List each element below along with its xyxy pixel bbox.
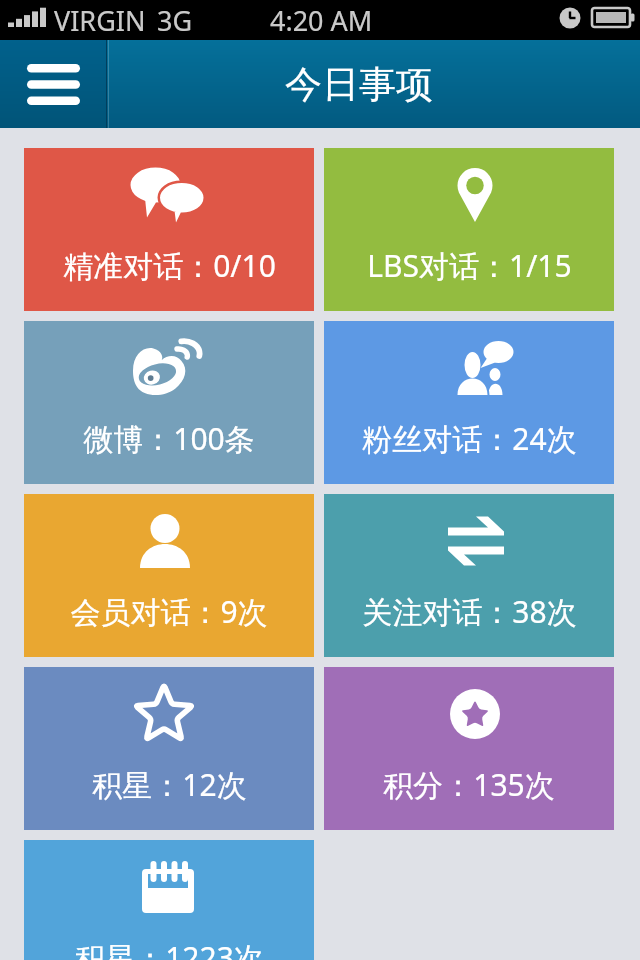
button[interactable]: 积星：12次 [24,667,314,830]
button[interactable]: 积分：135次 [324,667,614,830]
staticText: LBS对话：1/15 [367,245,572,286]
staticText: 会员对话：9次 [70,591,268,632]
button[interactable]: Menu [0,40,107,128]
button[interactable]: 会员对话：9次 [24,494,314,657]
staticText: 3G [157,2,193,39]
staticText: 积分：135次 [383,764,555,805]
staticText: VIRGIN [54,2,146,39]
staticText: 粉丝对话：24次 [362,418,577,459]
button[interactable]: LBS对话：1/15 [324,148,614,311]
staticText: 积星：12次 [92,764,247,805]
staticText: 积星：1223次 [75,937,264,960]
button[interactable]: 关注对话：38次 [324,494,614,657]
staticText: 4:20 AM [270,2,373,39]
staticText: 关注对话：38次 [362,591,577,632]
button[interactable]: 积星：1223次 [24,840,314,960]
staticText: 精准对话：0/10 [63,245,276,286]
staticText: 今日事项 [285,61,433,108]
staticText: 微博：100条 [83,418,255,459]
button[interactable]: 微博：100条 [24,321,314,484]
button[interactable]: 精准对话：0/10 [24,148,314,311]
button[interactable]: 粉丝对话：24次 [324,321,614,484]
